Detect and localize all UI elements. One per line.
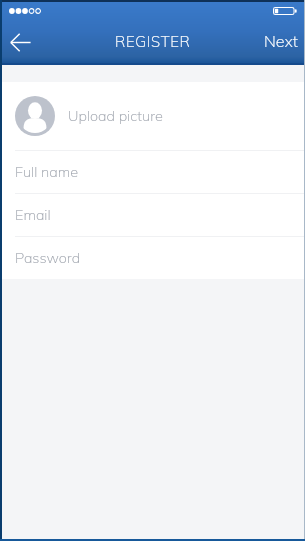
staticText: Upload picture [68, 106, 163, 124]
button[interactable]: Full name [0, 151, 305, 193]
button[interactable]: Next [254, 24, 305, 60]
staticText: Next [264, 31, 298, 51]
staticText: Email [15, 205, 51, 223]
staticText: Full name [15, 162, 79, 180]
staticText: REGISTER [115, 32, 191, 51]
staticText: Password [15, 248, 81, 266]
button[interactable]: Back [8, 30, 32, 54]
button[interactable]: Email [0, 194, 305, 236]
button[interactable]: Upload picture [0, 82, 305, 150]
button[interactable]: Password [0, 237, 305, 279]
